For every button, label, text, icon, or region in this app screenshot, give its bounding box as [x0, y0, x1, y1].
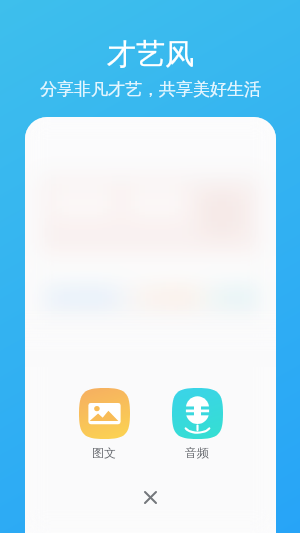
- button[interactable]: Close: [135, 482, 166, 513]
- button[interactable]: Create audio post: [164, 388, 230, 460]
- staticText: 才艺风: [107, 36, 194, 73]
- staticText: 图文: [92, 445, 116, 460]
- staticText: 音频: [185, 445, 209, 460]
- button[interactable]: Create image and text post: [71, 388, 137, 460]
- staticText: 分享非凡才艺，共享美好生活: [40, 79, 261, 100]
